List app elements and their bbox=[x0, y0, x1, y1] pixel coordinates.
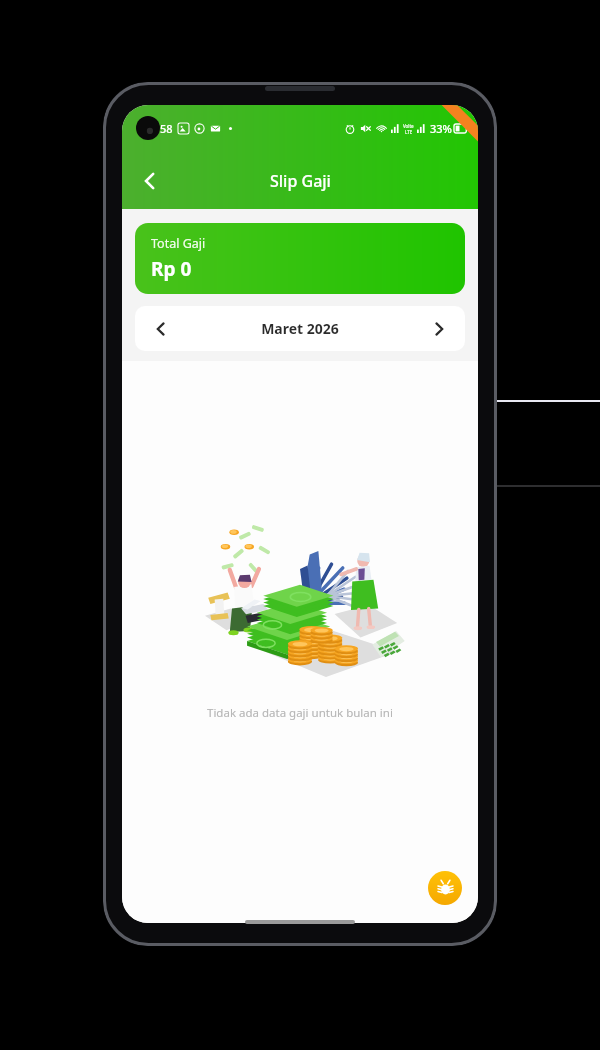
button[interactable]: Total Gaji bbox=[135, 223, 465, 294]
staticText: Volte bbox=[403, 123, 414, 129]
staticText: Maret 2026 bbox=[187, 319, 413, 338]
button[interactable]: Previous month bbox=[135, 306, 187, 351]
staticText: 58 bbox=[160, 121, 173, 136]
button[interactable]: Back bbox=[128, 159, 172, 203]
staticText: Rp 0 bbox=[151, 256, 192, 282]
button[interactable]: Next month bbox=[413, 306, 465, 351]
staticText: Total Gaji bbox=[151, 235, 206, 252]
staticText: 33% bbox=[430, 121, 452, 136]
button[interactable]: Debug bbox=[428, 871, 462, 905]
staticText: Slip Gaji bbox=[270, 170, 331, 192]
staticText: LTE bbox=[405, 129, 413, 135]
staticText: Tidak ada data gaji untuk bulan ini bbox=[207, 705, 393, 721]
